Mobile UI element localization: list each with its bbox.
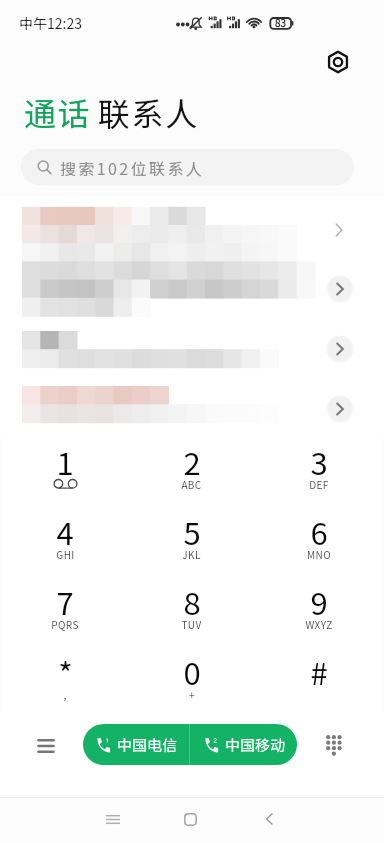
staticText: + — [189, 687, 195, 701]
staticText: 5 — [183, 509, 201, 554]
staticText: * — [58, 649, 73, 694]
button[interactable]: 0 — [128, 649, 255, 719]
staticText: 6 — [310, 509, 328, 554]
button[interactable]: 中国移动 — [190, 724, 297, 765]
staticText: WXYZ — [305, 617, 333, 631]
staticText: GHI — [56, 547, 75, 561]
button[interactable]: More options — [30, 730, 62, 762]
button[interactable]: 5 — [128, 509, 255, 579]
button[interactable]: # — [255, 649, 382, 719]
button[interactable]: Dialpad — [318, 728, 350, 760]
button[interactable]: 6 — [255, 509, 382, 579]
staticText: 搜索102位联系人 — [60, 156, 205, 179]
staticText: TUV — [181, 617, 202, 631]
button[interactable]: Back — [247, 797, 291, 841]
button[interactable]: Settings — [324, 48, 352, 76]
staticText: MNO — [307, 547, 331, 561]
button[interactable]: 8 — [128, 579, 255, 649]
staticText: 0 — [183, 649, 201, 694]
staticText: , — [63, 687, 67, 701]
button[interactable]: 联系人 — [98, 89, 199, 135]
staticText: 中国移动 — [225, 734, 286, 756]
staticText: 2 — [183, 439, 201, 484]
button[interactable]: 7 — [2, 579, 128, 649]
button[interactable]: Recents — [91, 797, 135, 841]
staticText: 中午12:23 — [19, 13, 82, 33]
staticText: 7 — [56, 579, 74, 624]
button[interactable]: 9 — [255, 579, 382, 649]
staticText: ABC — [181, 477, 202, 491]
staticText: # — [310, 649, 328, 694]
button[interactable]: 通话 — [24, 89, 92, 135]
staticText: 9 — [310, 579, 328, 624]
staticText: 8 — [183, 579, 201, 624]
button[interactable]: * — [2, 649, 128, 719]
button[interactable]: Home — [168, 797, 212, 841]
staticText: PQRS — [51, 617, 79, 631]
button[interactable]: 中国电信 — [83, 724, 189, 765]
staticText: JKL — [182, 547, 201, 561]
staticText: 1 — [56, 439, 74, 484]
button[interactable]: 4 — [2, 509, 128, 579]
staticText: DEF — [309, 477, 329, 491]
staticText: 中国电信 — [117, 734, 178, 756]
button[interactable]: 2 — [128, 439, 255, 509]
button[interactable]: 1 — [2, 439, 128, 509]
staticText: 83 — [275, 15, 287, 29]
button[interactable]: 3 — [255, 439, 382, 509]
staticText: 4 — [56, 509, 74, 554]
staticText: 3 — [310, 439, 328, 484]
button[interactable]: 搜索102位联系人 — [21, 149, 354, 185]
